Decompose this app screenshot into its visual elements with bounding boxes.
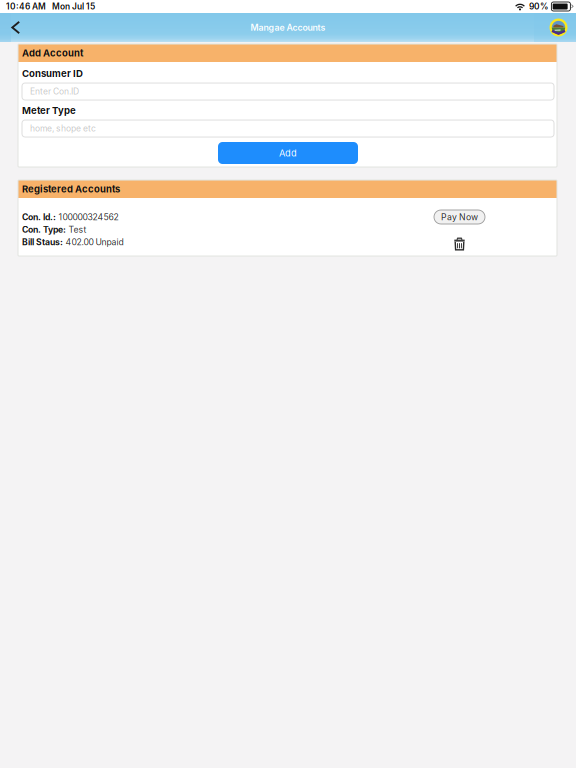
button[interactable]: Back [0,13,44,42]
button[interactable]: home, shope etc [22,120,554,137]
button[interactable]: Profile [532,13,576,42]
staticText: Bill Staus: [22,237,63,247]
button[interactable]: Pay Now [434,210,485,224]
staticText: 90% [529,1,548,12]
staticText: home, shope etc [30,123,96,134]
staticText: Test [68,224,86,235]
staticText: Pay Now [441,212,478,222]
staticText: Con. Id.: [22,212,56,222]
staticText: Con. Type: [22,224,66,235]
button[interactable]: Add [218,142,358,164]
button[interactable]: Delete account [442,237,476,251]
staticText: 10:46 AM [6,1,46,12]
button[interactable]: Enter Con.ID [22,83,554,100]
staticText: Add [279,147,297,159]
staticText: 100000324562 [58,212,118,222]
staticText: Registered Accounts [22,183,120,195]
staticText: Meter Type [22,105,76,116]
staticText: Add Account [22,47,83,59]
staticText: 402.00 Unpaid [65,237,123,247]
staticText: Mon Jul 15 [52,1,95,12]
staticText: Consumer ID [22,68,83,79]
staticText: Mangae Accounts [250,22,325,33]
staticText: Enter Con.ID [30,86,79,97]
